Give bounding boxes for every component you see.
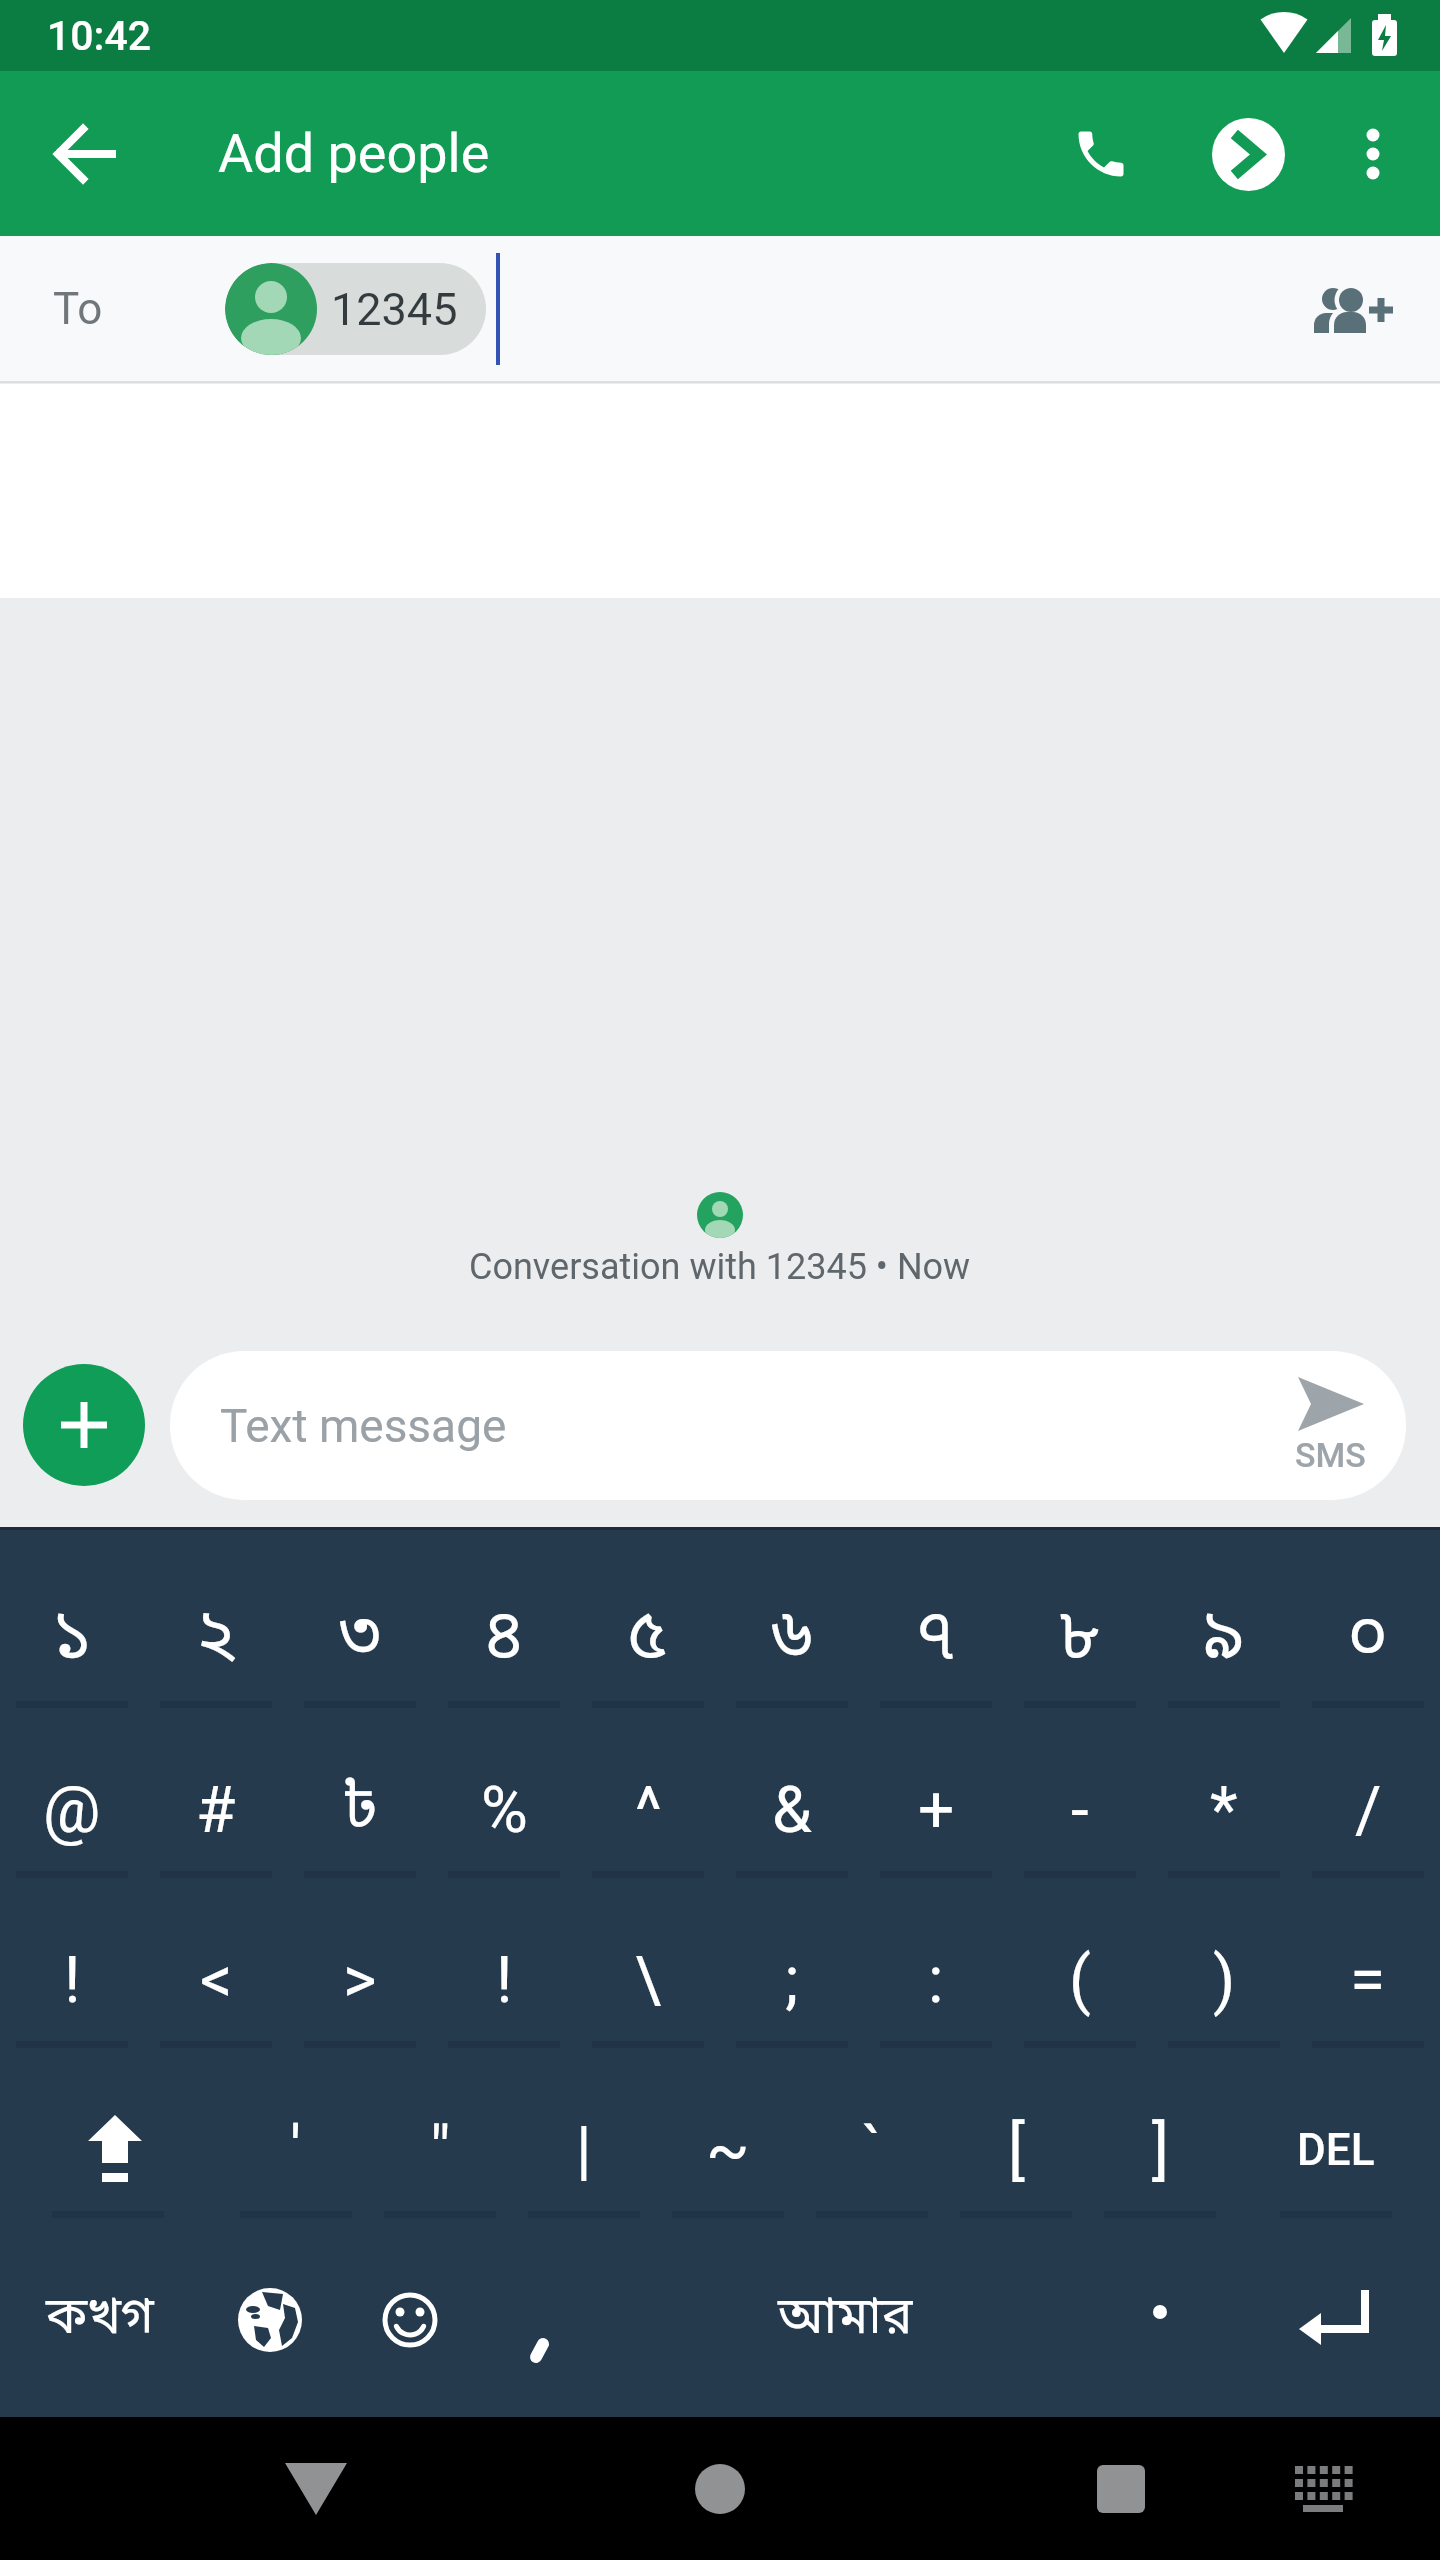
button[interactable]: ০ xyxy=(1296,1555,1440,1725)
button[interactable] xyxy=(1230,2235,1440,2405)
button[interactable] xyxy=(1212,118,1285,191)
button[interactable]: ৫ xyxy=(576,1555,720,1725)
button[interactable] xyxy=(23,1364,145,1486)
staticText: = xyxy=(1350,1943,1386,2018)
staticText: ] xyxy=(1152,2113,1169,2188)
button[interactable]: " xyxy=(368,2065,512,2235)
staticText: % xyxy=(481,1773,528,1848)
button[interactable]: % xyxy=(432,1725,576,1895)
button[interactable]: ! xyxy=(432,1895,576,2065)
button[interactable] xyxy=(340,2235,480,2405)
button[interactable]: * xyxy=(1152,1725,1296,1895)
button[interactable] xyxy=(1071,2439,1171,2539)
button[interactable]: + xyxy=(864,1725,1008,1895)
button[interactable] xyxy=(1279,2444,1369,2534)
button[interactable]: [ xyxy=(944,2065,1088,2235)
button[interactable]: ` xyxy=(800,2065,944,2235)
button[interactable]: ৳ xyxy=(288,1725,432,1895)
button[interactable]: < xyxy=(144,1895,288,2065)
staticText: Conversation with 12345 • Now xyxy=(469,1246,971,1288)
staticText: ৬ xyxy=(771,1594,813,1687)
staticText: ~ xyxy=(706,2113,750,2188)
button[interactable]: 12345 xyxy=(225,263,486,355)
button[interactable]: \ xyxy=(576,1895,720,2065)
button[interactable] xyxy=(1090,2235,1230,2405)
button[interactable]: ১ xyxy=(0,1555,144,1725)
staticText: Text message xyxy=(220,1399,507,1453)
staticText: - xyxy=(1071,1773,1089,1848)
staticText: To xyxy=(53,283,103,335)
button[interactable] xyxy=(40,109,130,199)
staticText: | xyxy=(576,2113,592,2188)
staticText: SMS xyxy=(1295,1435,1366,1475)
button[interactable]: ^ xyxy=(576,1725,720,1895)
button[interactable] xyxy=(266,2439,366,2539)
staticText: " xyxy=(430,2113,451,2188)
staticText: ^ xyxy=(635,1773,662,1848)
staticText: ( xyxy=(1069,1943,1091,2018)
button[interactable]: > xyxy=(288,1895,432,2065)
staticText: < xyxy=(200,1943,233,2018)
button[interactable]: @ xyxy=(0,1725,144,1895)
button[interactable] xyxy=(200,2235,340,2405)
button[interactable]: ] xyxy=(1088,2065,1232,2235)
button[interactable]: & xyxy=(720,1725,864,1895)
staticText: [ xyxy=(1008,2113,1025,2188)
button[interactable]: ৮ xyxy=(1008,1555,1152,1725)
staticText: @ xyxy=(43,1773,101,1848)
staticText: > xyxy=(343,1943,377,2018)
staticText: ৳ xyxy=(341,1768,379,1853)
button[interactable]: ৬ xyxy=(720,1555,864,1725)
staticText: ৯ xyxy=(1203,1594,1245,1687)
staticText: ৪ xyxy=(483,1594,525,1687)
button[interactable]: | xyxy=(512,2065,656,2235)
button[interactable]: DEL xyxy=(1232,2065,1440,2235)
button[interactable]: ৯ xyxy=(1152,1555,1296,1725)
button[interactable]: # xyxy=(144,1725,288,1895)
staticText: & xyxy=(772,1773,812,1848)
staticText: ৮ xyxy=(1059,1594,1101,1687)
staticText: আমার xyxy=(778,2286,913,2354)
button[interactable]: কখগ xyxy=(0,2235,200,2405)
button[interactable]: ; xyxy=(720,1895,864,2065)
button[interactable] xyxy=(1312,267,1396,351)
button[interactable]: ) xyxy=(1152,1895,1296,2065)
button[interactable]: : xyxy=(864,1895,1008,2065)
staticText: 10:42 xyxy=(47,12,152,60)
button[interactable] xyxy=(670,2439,770,2539)
button[interactable] xyxy=(0,2065,216,2235)
button[interactable]: ( xyxy=(1008,1895,1152,2065)
staticText: ! xyxy=(496,1943,513,2018)
button[interactable]: আমার xyxy=(600,2235,1090,2405)
button[interactable] xyxy=(480,2235,600,2405)
staticText: ` xyxy=(862,2113,882,2188)
staticText: ; xyxy=(785,1943,799,2018)
button[interactable]: ২ xyxy=(144,1555,288,1725)
staticText: ২ xyxy=(195,1594,237,1687)
staticText: * xyxy=(1210,1773,1238,1848)
staticText: ৫ xyxy=(627,1594,669,1687)
button[interactable]: Text message xyxy=(170,1351,1406,1500)
button[interactable]: ৩ xyxy=(288,1555,432,1725)
staticText: ' xyxy=(290,2113,302,2188)
button[interactable]: ' xyxy=(224,2065,368,2235)
staticText: : xyxy=(928,1943,944,2018)
button[interactable]: ৭ xyxy=(864,1555,1008,1725)
staticText: ৩ xyxy=(339,1594,381,1687)
button[interactable]: ৪ xyxy=(432,1555,576,1725)
staticText: DEL xyxy=(1297,2124,1375,2176)
staticText: \ xyxy=(635,1943,662,2018)
button[interactable]: ! xyxy=(0,1895,144,2065)
button[interactable] xyxy=(1328,109,1418,199)
staticText: ) xyxy=(1213,1943,1236,2018)
staticText: ! xyxy=(64,1943,81,2018)
staticText: Add people xyxy=(218,122,490,185)
button[interactable]: ~ xyxy=(656,2065,800,2235)
button[interactable] xyxy=(1056,109,1146,199)
button[interactable]: - xyxy=(1008,1725,1152,1895)
staticText: # xyxy=(196,1773,236,1848)
button[interactable]: / xyxy=(1296,1725,1440,1895)
staticText: / xyxy=(1355,1773,1382,1848)
button[interactable]: SMS xyxy=(1295,1377,1366,1475)
button[interactable]: = xyxy=(1296,1895,1440,2065)
